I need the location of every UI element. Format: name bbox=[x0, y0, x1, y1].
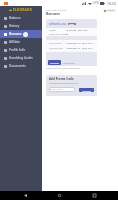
button[interactable]: Recent apps bbox=[84, 191, 104, 200]
staticText: Add promo code to get bonus bbox=[49, 82, 79, 85]
staticText: Main page / Bonuses bbox=[46, 9, 67, 12]
staticText: November 01, 2020 16:11 bbox=[66, 47, 94, 50]
button[interactable]: Back bbox=[15, 191, 35, 200]
staticText: Documents bbox=[9, 64, 26, 68]
staticText: 0 bbox=[66, 33, 68, 36]
button[interactable]: Deposit bbox=[103, 9, 116, 12]
staticText: Bonuses bbox=[46, 11, 60, 15]
staticText: Add Promo Code bbox=[49, 77, 74, 81]
staticText: Profile Info bbox=[9, 48, 26, 52]
staticText: Affiliate bbox=[9, 40, 21, 44]
staticText: 57% bbox=[93, 1, 99, 5]
staticText: November 01, 2020 16:11 bbox=[66, 42, 94, 45]
button[interactable]: History bbox=[0, 22, 42, 30]
staticText: Promo code bbox=[50, 88, 62, 91]
staticText: History bbox=[9, 24, 20, 28]
staticText: Activate bbox=[82, 89, 91, 92]
button[interactable]: Profile Info bbox=[0, 46, 42, 54]
button[interactable]: Gambling Limits bbox=[0, 54, 42, 62]
staticText: Gambling Limits bbox=[9, 56, 33, 60]
staticText: Price per counted bbox=[49, 33, 69, 36]
staticText: Date issued bbox=[49, 42, 62, 45]
staticText: Activate until bbox=[49, 47, 64, 50]
staticText: 16:34 bbox=[107, 1, 116, 6]
button[interactable]: Promo code bbox=[49, 87, 75, 92]
button[interactable]: Balance bbox=[0, 14, 42, 22]
staticText: Balance bbox=[9, 16, 21, 20]
staticText: Velo Thijs, Velo Thijs bbox=[66, 29, 88, 32]
button[interactable]: Activate bbox=[48, 60, 61, 65]
staticText: Have a promo code? Add it here. bbox=[46, 67, 82, 70]
staticText: Bonuses bbox=[9, 32, 22, 36]
button[interactable]: Home bbox=[49, 191, 69, 200]
staticText: ELDORADO bbox=[13, 8, 33, 12]
staticText: Definitions bbox=[63, 61, 76, 64]
staticText: softswiss.out bbox=[49, 22, 67, 26]
button[interactable]: Documents bbox=[0, 62, 42, 70]
staticText: Deposit bbox=[107, 9, 115, 12]
button[interactable]: Activate bbox=[79, 88, 94, 92]
button[interactable]: Bonuses bbox=[0, 30, 42, 38]
staticText: Active bbox=[69, 23, 75, 25]
button[interactable]: Affiliate bbox=[0, 38, 42, 46]
staticText: Name bbox=[49, 29, 56, 32]
staticText: Activate bbox=[50, 61, 59, 64]
